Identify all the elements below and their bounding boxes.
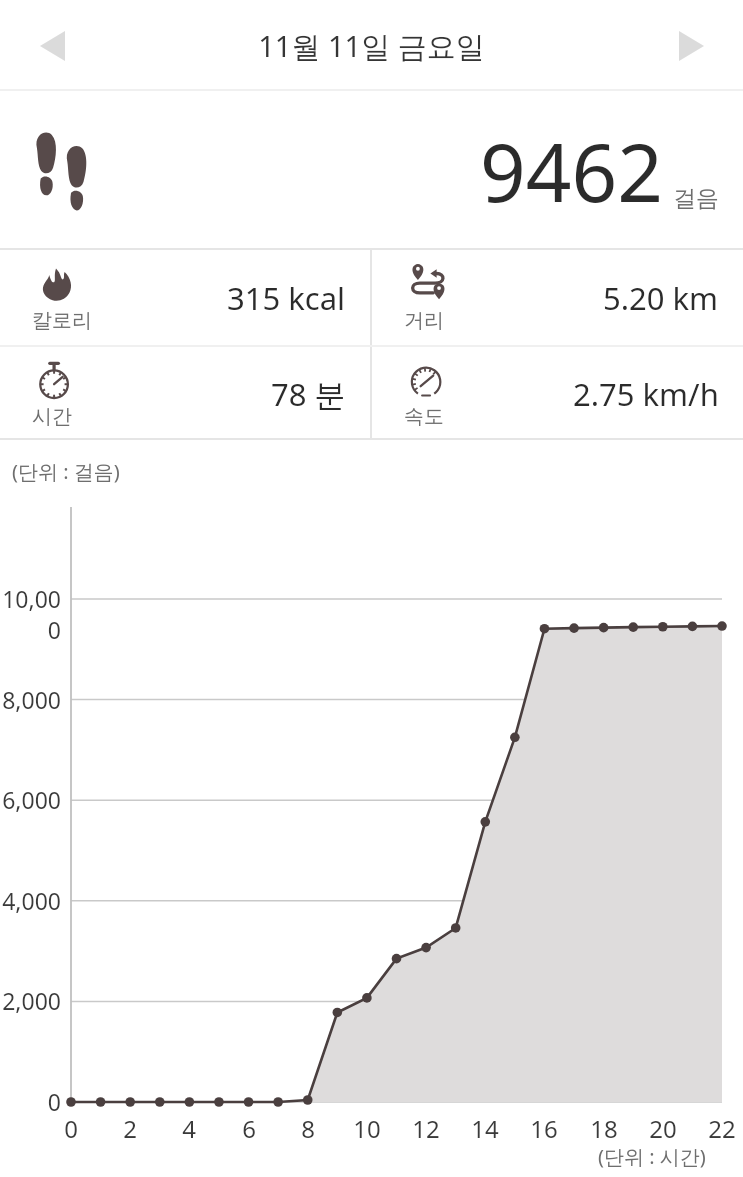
- staticText: 14: [464, 1112, 506, 1145]
- staticText: 칼로리: [32, 308, 92, 333]
- staticText: 8,000: [0, 684, 61, 715]
- staticText: 12: [405, 1112, 447, 1145]
- staticText: 4: [168, 1112, 210, 1145]
- staticText: 시간: [32, 404, 72, 429]
- staticText: 0: [50, 1112, 92, 1145]
- staticText: 16: [523, 1112, 565, 1145]
- staticText: 315 kcal: [227, 277, 346, 319]
- staticText: 속도: [404, 404, 444, 429]
- staticText: 10: [346, 1112, 388, 1145]
- staticText: 20: [642, 1112, 684, 1145]
- staticText: 8: [287, 1112, 329, 1145]
- staticText: 0: [0, 1086, 61, 1117]
- staticText: 5.20 km: [603, 277, 719, 319]
- staticText: 22: [701, 1112, 743, 1145]
- button[interactable]: Previous day: [20, 15, 84, 77]
- button[interactable]: 시간: [0, 347, 370, 440]
- staticText: 18: [583, 1112, 625, 1145]
- staticText: 9462: [480, 116, 664, 225]
- button[interactable]: Next day: [659, 15, 723, 77]
- staticText: 2: [109, 1112, 151, 1145]
- button[interactable]: 9462: [0, 91, 743, 250]
- button[interactable]: 거리: [372, 250, 743, 345]
- staticText: 거리: [404, 308, 444, 333]
- staticText: 11월 11일 금요일: [258, 26, 485, 66]
- staticText: (단위 : 걸음): [12, 458, 120, 485]
- staticText: 4,000: [0, 885, 61, 916]
- staticText: 2,000: [0, 985, 61, 1016]
- staticText: 78 분: [271, 373, 346, 415]
- staticText: 10,000: [0, 583, 61, 645]
- staticText: 6,000: [0, 784, 61, 815]
- staticText: 2.75 km/h: [573, 373, 719, 415]
- staticText: 6: [228, 1112, 270, 1145]
- staticText: (단위 : 시간): [598, 1143, 706, 1170]
- staticText: 걸음: [673, 184, 719, 213]
- button[interactable]: 칼로리: [0, 250, 370, 345]
- button[interactable]: 속도: [372, 347, 743, 440]
